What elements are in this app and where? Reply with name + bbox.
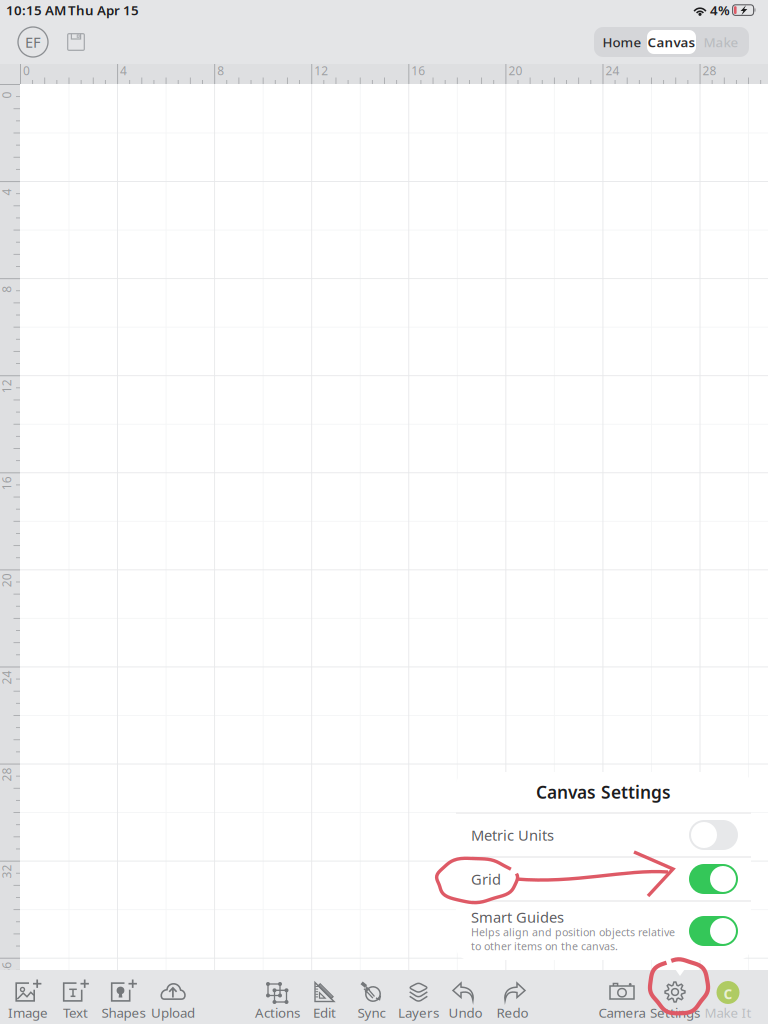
staticText: 0 [23, 62, 30, 78]
staticText: 24 [605, 62, 619, 78]
staticText: Camera [598, 1004, 645, 1021]
button[interactable]: On [689, 916, 738, 946]
button[interactable]: Redo [489, 977, 536, 1021]
staticText: Smart Guides [471, 907, 564, 927]
button[interactable]: Canvas [647, 30, 696, 54]
staticText: Text [63, 1004, 88, 1021]
staticText: 16 [411, 62, 425, 78]
staticText: Make It [704, 1004, 751, 1021]
button[interactable]: Account [13, 22, 53, 62]
button[interactable]: Shapes [99, 977, 148, 1021]
staticText: 12 [314, 62, 328, 78]
button[interactable]: Actions [254, 977, 301, 1021]
staticText: 12 [0, 378, 13, 394]
button[interactable]: Make [696, 30, 746, 54]
button[interactable]: Edit [301, 977, 348, 1021]
button[interactable]: Layers [395, 977, 442, 1021]
button[interactable]: Undo [442, 977, 489, 1021]
staticText: Helps align and position objects relativ… [471, 925, 675, 939]
staticText: 8 [3, 281, 10, 297]
staticText: 16 [0, 475, 13, 491]
staticText: Settings [650, 1004, 700, 1021]
button[interactable]: Upload [148, 977, 198, 1021]
button[interactable]: Grid [456, 857, 751, 900]
staticText: Redo [496, 1004, 528, 1021]
button[interactable]: On [689, 864, 738, 894]
staticText: 32 [0, 864, 13, 879]
button[interactable]: Off [689, 820, 738, 850]
button[interactable]: Text [52, 977, 99, 1021]
button[interactable]: c [702, 977, 754, 1021]
button[interactable]: Settings [648, 977, 702, 1021]
staticText: Upload [151, 1004, 195, 1021]
staticText: 36 [0, 961, 13, 977]
staticText: Sync [357, 1004, 385, 1021]
staticText: c [723, 981, 732, 1004]
button[interactable]: Sync [348, 977, 395, 1021]
staticText: Edit [313, 1004, 336, 1021]
staticText: 8 [217, 62, 224, 78]
staticText: 28 [703, 62, 717, 78]
staticText: 4 [3, 184, 10, 200]
staticText: Thu Apr 15 [68, 1, 139, 19]
staticText: Home [602, 33, 641, 51]
staticText: 28 [0, 767, 13, 782]
staticText: 20 [508, 62, 522, 78]
staticText: Make [703, 33, 738, 51]
button[interactable]: Home [597, 30, 647, 54]
button[interactable]: Metric Units [456, 813, 751, 856]
staticText: 20 [0, 572, 13, 588]
staticText: Canvas [647, 33, 695, 51]
button[interactable]: Smart Guides [456, 901, 751, 960]
staticText: 4 [120, 62, 127, 78]
staticText: Shapes [101, 1004, 145, 1021]
staticText: Actions [255, 1004, 300, 1021]
staticText: Undo [448, 1004, 482, 1021]
staticText: Metric Units [471, 825, 554, 845]
staticText: Grid [471, 869, 501, 889]
button[interactable]: Image [4, 977, 52, 1021]
staticText: to other items on the canvas. [471, 939, 618, 953]
staticText: EF [25, 32, 41, 52]
staticText: Canvas Settings [536, 780, 671, 803]
staticText: Image [8, 1004, 48, 1021]
staticText: Layers [398, 1004, 439, 1021]
staticText: 24 [0, 669, 13, 685]
button[interactable]: Camera [596, 977, 648, 1021]
staticText: 10:15 AM [6, 1, 66, 19]
staticText: 0 [3, 87, 10, 103]
button[interactable]: Save [58, 24, 94, 60]
staticText: 4% [710, 1, 730, 19]
